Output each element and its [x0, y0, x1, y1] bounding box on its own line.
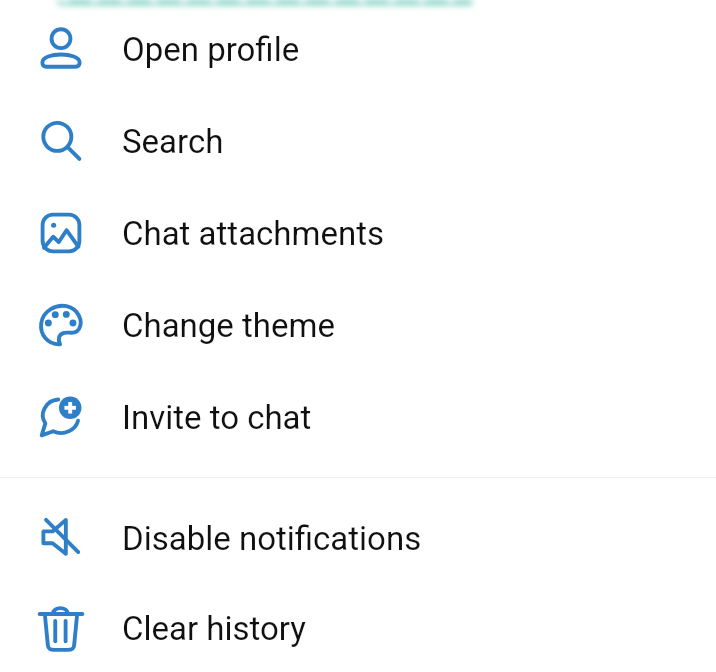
staticText: Disable notifications — [122, 519, 422, 558]
button[interactable]: Invite to chat — [0, 371, 716, 463]
button[interactable]: Open profile — [0, 3, 716, 95]
button[interactable]: Search — [0, 95, 716, 187]
staticText: Clear history — [122, 609, 306, 648]
button[interactable]: Clear history — [0, 584, 716, 672]
staticText: Search — [122, 122, 224, 161]
staticText: Open profile — [122, 30, 300, 69]
staticText: Chat attachments — [122, 214, 385, 253]
staticText: Invite to chat — [122, 398, 312, 437]
button[interactable]: Change theme — [0, 279, 716, 371]
staticText: Change theme — [122, 306, 335, 345]
button[interactable]: Disable notifications — [0, 492, 716, 584]
button[interactable]: Chat attachments — [0, 187, 716, 279]
